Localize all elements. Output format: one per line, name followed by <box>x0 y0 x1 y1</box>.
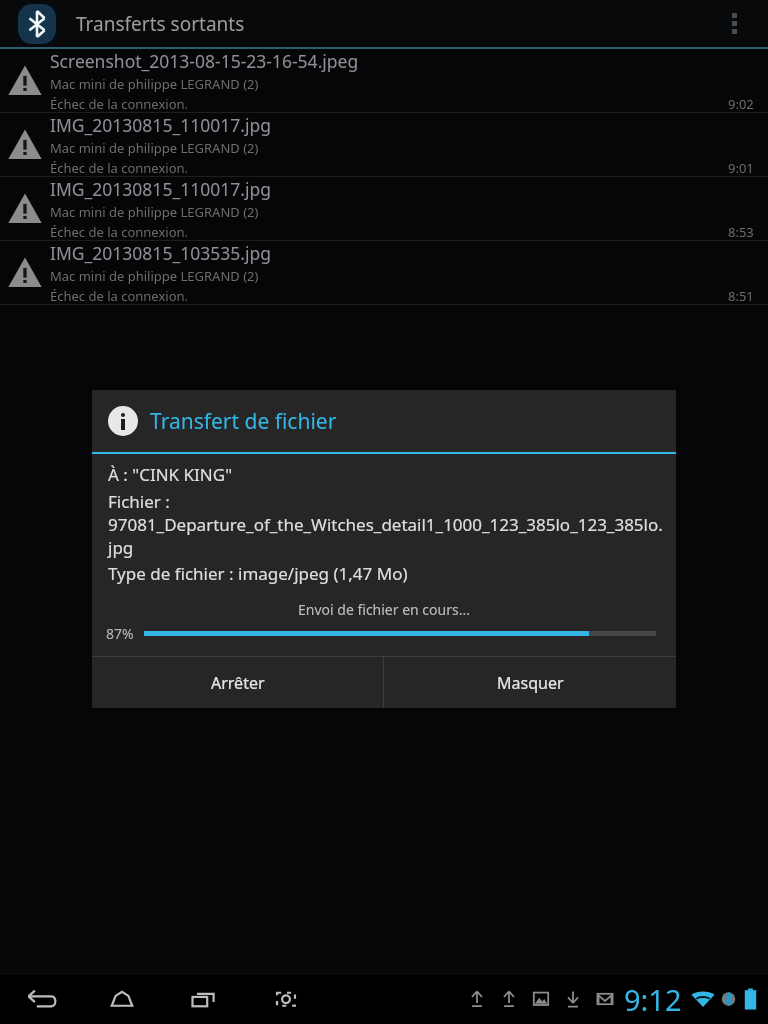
staticText: Échec de la connexion. <box>50 287 189 304</box>
staticText: IMG_20130815_103535.jpg <box>50 241 271 265</box>
button[interactable]: Screenshot_2013-08-15-23-16-54.jpeg <box>0 49 768 113</box>
staticText: Mac mini de philippe LEGRAND (2) <box>50 139 259 157</box>
staticText: Échec de la connexion. <box>50 95 189 112</box>
staticText: Transfert de fichier <box>150 407 337 436</box>
button[interactable]: IMG_20130815_110017.jpg <box>0 113 768 177</box>
staticText: À : "CINK KING" <box>108 463 233 486</box>
staticText: Arrêter <box>211 672 265 694</box>
staticText: Mac mini de philippe LEGRAND (2) <box>50 267 259 285</box>
button[interactable]: More options <box>710 0 758 47</box>
button[interactable]: IMG_20130815_103535.jpg <box>0 241 768 305</box>
staticText: Envoi de fichier en cours... <box>92 600 676 619</box>
button[interactable]: Arrêter <box>92 657 383 708</box>
staticText: Fichier : 97081_Departure_of_the_Witches… <box>108 490 666 559</box>
other: Screenshot saved <box>530 987 552 1011</box>
button[interactable]: Recent apps <box>182 974 226 1024</box>
staticText: Transferts sortants <box>76 11 245 37</box>
staticText: Échec de la connexion. <box>50 223 189 240</box>
staticText: Échec de la connexion. <box>50 159 189 176</box>
button[interactable]: Back <box>18 974 62 1024</box>
staticText: Screenshot_2013-08-15-23-16-54.jpeg <box>50 49 359 73</box>
other: Download <box>562 987 584 1011</box>
staticText: 9:01 <box>728 159 754 176</box>
staticText: 9:12 <box>624 980 682 1019</box>
staticText: Type de fichier : image/jpeg (1,47 Mo) <box>108 562 408 585</box>
button[interactable]: Bluetooth <box>18 4 56 44</box>
button[interactable]: Screenshot <box>264 974 308 1024</box>
staticText: 8:51 <box>728 287 754 304</box>
button[interactable]: Home <box>100 974 144 1024</box>
staticText: 87% <box>106 624 134 643</box>
other: Upload <box>498 987 520 1011</box>
staticText: Mac mini de philippe LEGRAND (2) <box>50 203 259 221</box>
other: Upload <box>466 987 488 1011</box>
button[interactable]: IMG_20130815_110017.jpg <box>0 177 768 241</box>
staticText: IMG_20130815_110017.jpg <box>50 177 271 201</box>
other: Gmail <box>594 987 616 1011</box>
staticText: 8:53 <box>728 223 754 240</box>
staticText: IMG_20130815_110017.jpg <box>50 113 271 137</box>
staticText: Masquer <box>497 672 564 694</box>
button[interactable]: Masquer <box>384 657 676 708</box>
staticText: 9:02 <box>728 95 754 112</box>
staticText: Mac mini de philippe LEGRAND (2) <box>50 75 259 93</box>
